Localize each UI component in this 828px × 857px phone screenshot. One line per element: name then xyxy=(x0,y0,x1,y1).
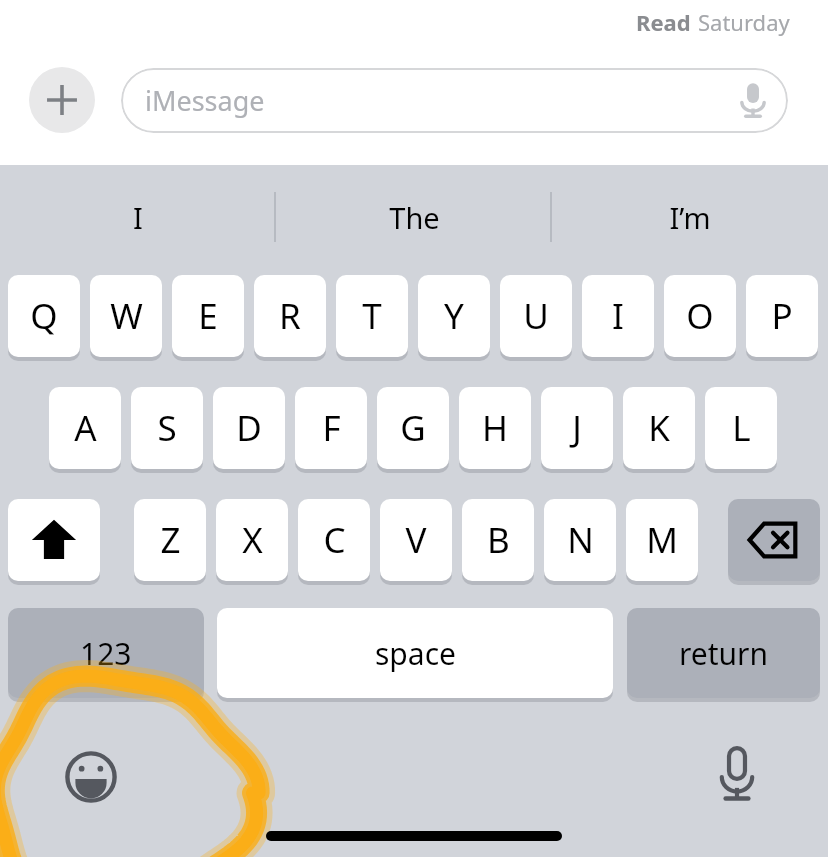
button[interactable]: space xyxy=(217,608,613,698)
button[interactable]: Shift xyxy=(8,499,100,581)
button[interactable]: A xyxy=(49,387,121,469)
staticText: L xyxy=(732,404,751,452)
staticText: K xyxy=(648,404,670,452)
staticText: The xyxy=(389,198,440,237)
staticText: D xyxy=(236,404,262,452)
staticText: P xyxy=(771,292,793,340)
staticText: Y xyxy=(444,292,464,340)
staticText: Read xyxy=(636,7,691,37)
button[interactable]: V xyxy=(380,499,452,581)
button[interactable]: S xyxy=(131,387,203,469)
button[interactable]: Q xyxy=(8,275,80,357)
button[interactable]: Z xyxy=(134,499,206,581)
staticText: B xyxy=(487,516,510,564)
button[interactable]: L xyxy=(705,387,777,469)
staticText: return xyxy=(679,633,769,674)
staticText: space xyxy=(375,633,456,674)
button[interactable]: iMessage xyxy=(121,68,788,133)
staticText: H xyxy=(482,404,508,452)
button[interactable]: Emoji xyxy=(55,741,127,813)
button[interactable]: D xyxy=(213,387,285,469)
button[interactable]: K xyxy=(623,387,695,469)
staticText: J xyxy=(572,404,582,452)
button[interactable]: Dictation xyxy=(701,739,773,811)
button[interactable]: W xyxy=(90,275,162,357)
staticText: I’m xyxy=(669,198,711,237)
staticText: C xyxy=(323,516,346,564)
button[interactable]: F xyxy=(295,387,367,469)
button[interactable]: J xyxy=(541,387,613,469)
button[interactable]: return xyxy=(627,608,820,698)
staticText: M xyxy=(646,516,678,564)
button[interactable]: I’m xyxy=(552,165,828,270)
staticText: W xyxy=(110,292,143,340)
staticText: 123 xyxy=(80,633,132,674)
staticText: X xyxy=(242,516,263,564)
staticText: V xyxy=(405,516,427,564)
button[interactable]: C xyxy=(298,499,370,581)
button[interactable]: N xyxy=(544,499,616,581)
staticText: F xyxy=(322,404,341,452)
button[interactable]: I xyxy=(0,165,276,270)
other: Dictate xyxy=(740,82,766,120)
button[interactable]: I xyxy=(582,275,654,357)
staticText: A xyxy=(74,404,97,452)
button[interactable]: Backspace xyxy=(728,499,820,581)
button[interactable]: B xyxy=(462,499,534,581)
button[interactable]: U xyxy=(500,275,572,357)
button[interactable]: Y xyxy=(418,275,490,357)
staticText: I xyxy=(612,292,624,340)
button[interactable]: P xyxy=(746,275,818,357)
button[interactable]: G xyxy=(377,387,449,469)
staticText: O xyxy=(686,292,714,340)
staticText: Saturday xyxy=(698,7,790,37)
staticText: N xyxy=(567,516,594,564)
staticText: iMessage xyxy=(145,82,265,119)
button[interactable]: T xyxy=(336,275,408,357)
staticText: E xyxy=(198,292,218,340)
button[interactable]: R xyxy=(254,275,326,357)
staticText: Q xyxy=(30,292,58,340)
button[interactable]: E xyxy=(172,275,244,357)
staticText: G xyxy=(400,404,426,452)
staticText: Z xyxy=(160,516,181,564)
button[interactable]: H xyxy=(459,387,531,469)
staticText: U xyxy=(523,292,549,340)
staticText: R xyxy=(279,292,301,340)
button[interactable]: Add attachment xyxy=(29,67,95,133)
staticText: I xyxy=(133,198,143,237)
button[interactable]: X xyxy=(216,499,288,581)
staticText: S xyxy=(157,404,177,452)
button[interactable]: M xyxy=(626,499,698,581)
button[interactable]: The xyxy=(276,165,552,270)
button[interactable]: 123 xyxy=(8,608,204,698)
staticText: T xyxy=(362,292,382,340)
button[interactable]: O xyxy=(664,275,736,357)
